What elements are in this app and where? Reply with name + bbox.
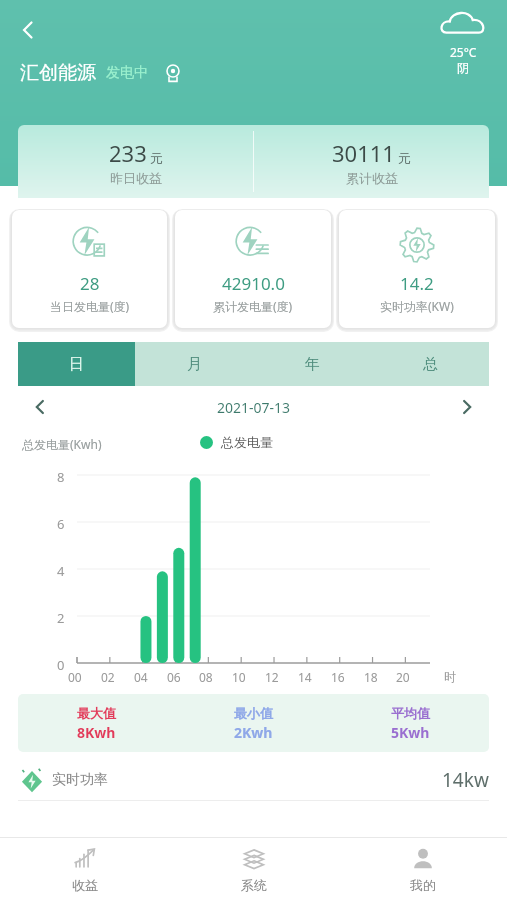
button[interactable]: 年 <box>253 342 371 386</box>
staticText: 总发电量(Kwh) <box>22 436 102 452</box>
staticText: 08 <box>199 669 213 685</box>
button[interactable]: 我的 <box>338 838 507 900</box>
staticText: 14 <box>298 669 312 685</box>
staticText: 42910.0 <box>222 272 285 295</box>
staticText: 收益 <box>72 877 98 893</box>
staticText: 累计收益 <box>346 170 398 186</box>
button[interactable]: 42910.0 <box>175 210 331 328</box>
staticText: 28 <box>80 272 100 295</box>
button[interactable]: 233 <box>18 125 253 198</box>
button[interactable]: 总 <box>371 342 489 386</box>
staticText: 12 <box>265 669 279 685</box>
staticText: 总 <box>423 355 438 374</box>
staticText: 元 <box>398 150 411 166</box>
staticText: 5Kwh <box>391 723 430 742</box>
staticText: 20 <box>396 669 410 685</box>
staticText: 系统 <box>241 877 267 893</box>
button[interactable]: 14.2 <box>339 210 495 328</box>
staticText: 10 <box>232 669 246 685</box>
button[interactable]: Weather <box>441 8 485 75</box>
staticText: 时 <box>444 669 456 684</box>
staticText: 阴 <box>457 60 469 75</box>
staticText: 8 <box>57 468 65 486</box>
button[interactable]: 30111 <box>254 125 489 198</box>
button[interactable]: Back <box>8 10 48 50</box>
button[interactable]: 28 <box>12 210 167 328</box>
staticText: 累计发电量(度) <box>213 298 293 314</box>
staticText: 日 <box>69 355 84 374</box>
staticText: 发电中 <box>106 64 148 82</box>
staticText: 02 <box>101 669 115 685</box>
staticText: 8Kwh <box>77 723 116 742</box>
button[interactable]: 月 <box>135 342 253 386</box>
button[interactable]: 平均值 <box>332 694 489 752</box>
staticText: 平均值 <box>391 705 430 721</box>
staticText: 2 <box>57 609 65 627</box>
staticText: 00 <box>68 669 82 685</box>
staticText: 18 <box>364 669 378 685</box>
button[interactable]: 系统 <box>169 838 338 900</box>
button[interactable]: 最大值 <box>18 694 175 752</box>
staticText: 4 <box>57 562 65 580</box>
staticText: 总发电量 <box>221 434 273 450</box>
staticText: 14.2 <box>400 272 434 295</box>
staticText: 我的 <box>410 877 436 893</box>
button[interactable]: 日 <box>18 342 135 386</box>
staticText: 233 <box>109 138 147 168</box>
staticText: 30111 <box>332 138 395 168</box>
staticText: 元 <box>150 150 163 166</box>
staticText: 16 <box>331 669 345 685</box>
staticText: 6 <box>57 515 65 533</box>
button[interactable]: 最小值 <box>175 694 332 752</box>
staticText: 04 <box>134 669 148 685</box>
staticText: 2021-07-13 <box>58 398 449 417</box>
staticText: 25°C <box>450 44 477 60</box>
staticText: 实时功率(KW) <box>380 298 454 314</box>
staticText: 当日发电量(度) <box>50 298 130 314</box>
staticText: 年 <box>305 355 320 374</box>
staticText: 实时功率 <box>52 771 108 789</box>
staticText: 0 <box>57 656 65 674</box>
staticText: 最大值 <box>77 705 116 721</box>
staticText: 月 <box>187 355 202 374</box>
staticText: 14kw <box>442 767 489 793</box>
staticText: 汇创能源 <box>20 61 96 85</box>
button[interactable]: 实时功率 <box>18 760 489 800</box>
staticText: 2Kwh <box>234 723 273 742</box>
staticText: 06 <box>167 669 181 685</box>
button[interactable]: 收益 <box>0 838 169 900</box>
button[interactable]: Previous <box>22 389 58 425</box>
staticText: 昨日收益 <box>110 170 162 186</box>
button[interactable]: Next <box>449 389 485 425</box>
button[interactable]: Location <box>160 60 186 86</box>
staticText: 最小值 <box>234 705 273 721</box>
